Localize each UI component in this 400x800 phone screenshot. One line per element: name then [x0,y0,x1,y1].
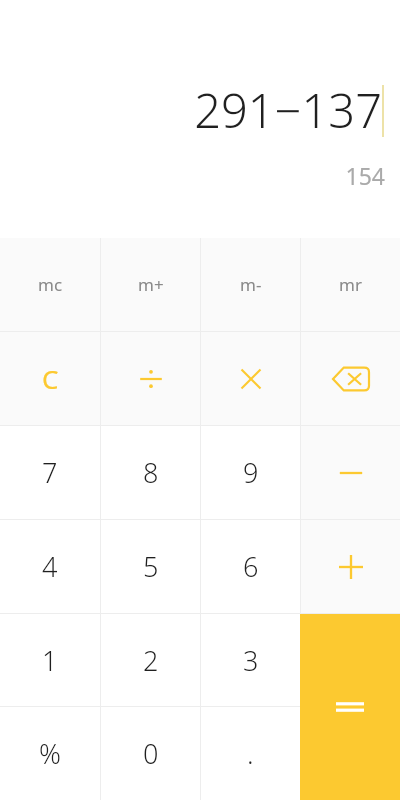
button[interactable]: 9 [201,426,300,519]
staticText: 154 [345,160,385,191]
staticText: 291−137 [194,78,382,142]
button[interactable]: C [0,332,100,425]
staticText: mc [38,273,63,296]
staticText: C [42,361,59,396]
button[interactable]: 7 [0,426,100,519]
staticText: 0 [143,735,159,772]
staticText: % [39,735,61,772]
staticText: m- [240,273,262,296]
button[interactable]: 8 [101,426,200,519]
button[interactable]: Plus [301,520,400,613]
staticText: 3 [243,642,259,679]
button[interactable]: Multiply [201,332,300,425]
button[interactable]: . [201,707,300,800]
staticText: 6 [243,548,259,585]
button[interactable]: 5 [101,520,200,613]
staticText: . [247,735,254,772]
button[interactable]: 6 [201,520,300,613]
staticText: 8 [143,454,159,491]
button[interactable]: m+ [101,238,200,331]
button[interactable]: 1 [0,614,100,706]
button[interactable]: 3 [201,614,300,706]
button[interactable]: Divide [101,332,200,425]
staticText: 4 [42,548,58,585]
button[interactable]: 0 [101,707,200,800]
staticText: m+ [138,273,164,296]
button[interactable]: Minus [301,426,400,519]
button[interactable]: 4 [0,520,100,613]
button[interactable]: 2 [101,614,200,706]
staticText: 9 [243,454,259,491]
staticText: 1 [42,642,58,679]
staticText: 2 [143,642,159,679]
button[interactable]: m- [201,238,300,331]
staticText: mr [339,273,362,296]
staticText: 7 [42,454,58,491]
button[interactable]: mc [0,238,100,331]
button[interactable]: % [0,707,100,800]
button[interactable]: mr [301,238,400,331]
staticText: 5 [143,548,159,585]
button[interactable]: Equals [300,614,400,800]
button[interactable]: Backspace [301,332,400,425]
